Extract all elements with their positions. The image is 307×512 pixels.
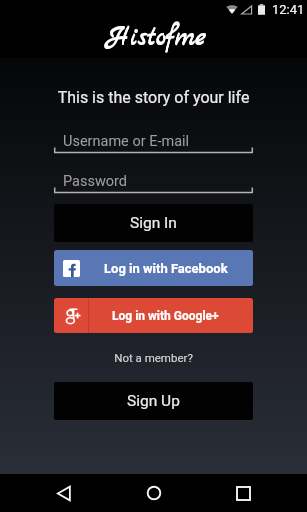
button[interactable]: Sign Up [54, 382, 253, 420]
button[interactable]: Sign In [54, 204, 253, 242]
staticText: Username or E-mail [63, 133, 190, 150]
staticText: Password [63, 173, 128, 190]
button[interactable]: Recents [220, 474, 266, 512]
staticText: Histofme [107, 21, 206, 56]
staticText: Sign Up [127, 392, 180, 410]
button[interactable]: Log in with Google+ [54, 298, 253, 333]
button[interactable]: Log in with Facebook [54, 250, 253, 286]
button[interactable]: Home [131, 474, 177, 512]
staticText: Log in with Facebook [104, 261, 228, 276]
staticText: 12:41 [272, 2, 305, 17]
staticText: Not a member? [0, 351, 307, 364]
button[interactable]: Back [41, 474, 87, 512]
staticText: Histofme [107, 20, 206, 55]
staticText: Log in with Google+ [112, 309, 219, 323]
staticText: This is the story of your life [0, 88, 307, 107]
button[interactable]: Password [54, 171, 253, 193]
button[interactable]: Username or E-mail [54, 131, 253, 153]
staticText: Sign In [130, 214, 177, 232]
